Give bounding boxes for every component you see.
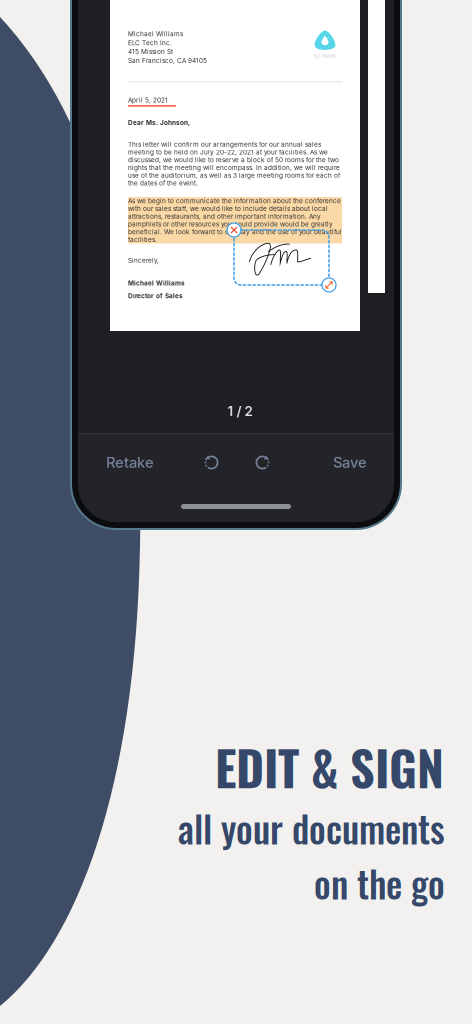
button[interactable]: Rotate left xyxy=(192,442,230,482)
staticText: 415 Mission St xyxy=(128,48,173,56)
staticText: Retake xyxy=(106,454,154,471)
staticText: San Francisco, CA 94105 xyxy=(128,57,207,64)
staticText: Michael Williams xyxy=(128,30,183,38)
staticText: all your documents xyxy=(178,801,445,855)
staticText: ELC Tech Inc. xyxy=(128,39,172,47)
staticText: ELC Tech Inc. xyxy=(313,53,336,58)
staticText: on the go xyxy=(314,856,445,910)
staticText: Director of Sales xyxy=(128,292,183,300)
staticText: April 5, 2021 xyxy=(128,96,168,104)
button[interactable]: Save xyxy=(312,442,388,482)
staticText: This letter will confirm our arrangement… xyxy=(128,141,340,187)
staticText: Save xyxy=(333,454,367,471)
staticText: Sincerely, xyxy=(128,256,159,264)
staticText: 1 / 2 xyxy=(227,403,252,419)
staticText: As we begin to communicate the informati… xyxy=(128,197,342,243)
staticText: Michael Williams xyxy=(128,279,185,287)
staticText: EDIT & SIGN xyxy=(215,731,444,802)
button[interactable]: Retake xyxy=(84,442,176,482)
staticText: Dear Ms. Johnson, xyxy=(128,119,190,126)
button[interactable]: Rotate right xyxy=(243,442,281,482)
